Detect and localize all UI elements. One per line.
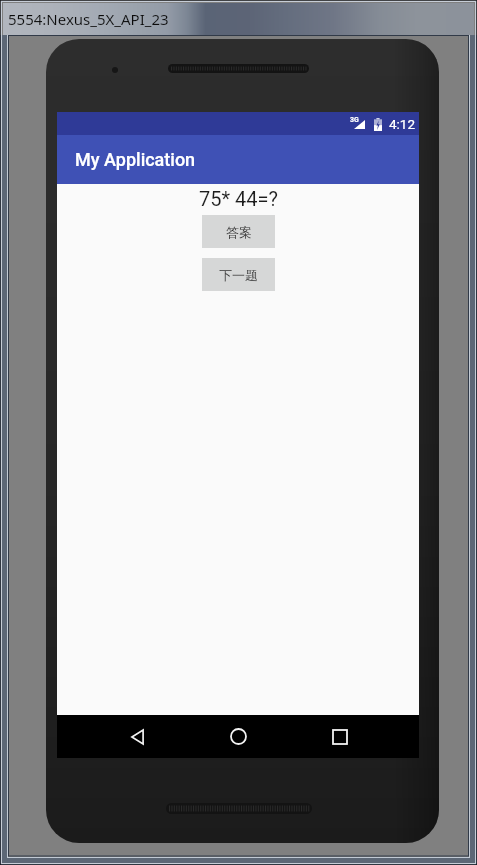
button[interactable]: Back <box>87 715 188 758</box>
button[interactable]: 下一题 <box>202 258 275 291</box>
button[interactable]: 答案 <box>202 215 275 248</box>
staticText: 75* 44=? <box>199 187 278 210</box>
button[interactable]: Home <box>188 715 289 758</box>
staticText: 3G <box>350 116 359 124</box>
staticText: 5554:Nexus_5X_API_23 <box>8 9 169 29</box>
button[interactable]: Recents <box>289 715 390 758</box>
staticText: 答案 <box>226 224 252 240</box>
staticText: My Application <box>75 149 196 170</box>
staticText: 下一题 <box>219 267 258 283</box>
staticText: 4:12 <box>389 116 416 132</box>
